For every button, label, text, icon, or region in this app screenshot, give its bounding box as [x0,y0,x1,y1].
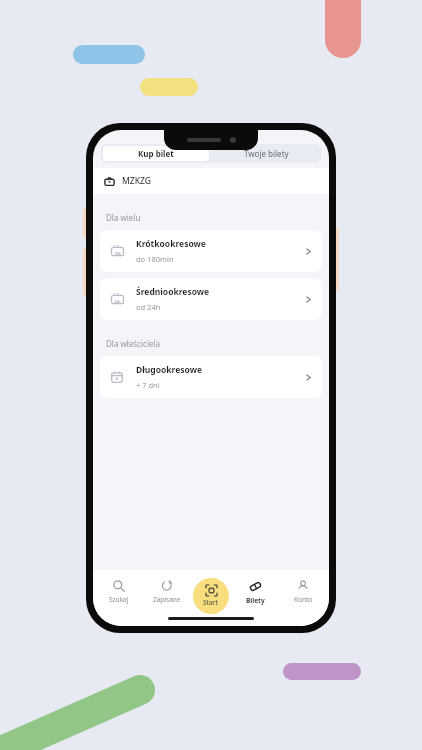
button[interactable]: Kup bilet [103,146,209,161]
staticText: do 180min [136,254,174,264]
staticText: Dla właściciela [106,338,161,349]
staticText: od 24h [136,302,161,312]
staticText: Zapisane [153,595,181,604]
staticText: 24h [114,299,121,304]
staticText: Dla wielu [106,212,141,223]
staticText: 180 [114,251,121,256]
button[interactable]: Długookresowe [100,356,322,398]
staticText: + 7 dni [136,380,160,390]
staticText: Bilety [246,596,265,605]
button[interactable]: Twoje bilety [211,144,321,163]
staticText: Średniookresowe [136,286,210,298]
button[interactable]: Konto [281,578,325,606]
staticText: Konto [294,595,313,604]
staticText: Twoje bilety [244,148,289,159]
staticText: Szukaj [109,595,129,604]
button[interactable]: 180 [100,230,322,272]
staticText: MZKZG [122,175,152,187]
button[interactable]: Bilety [233,578,277,607]
button[interactable]: Szukaj [97,578,141,606]
staticText: Kup bilet [138,148,174,159]
button[interactable]: MZKZG [93,168,329,194]
button[interactable]: 24h [100,278,322,320]
staticText: Długookresowe [136,364,203,376]
staticText: Krótkookresowe [136,238,206,250]
button[interactable]: Start [193,578,229,614]
staticText: Start [203,598,219,607]
button[interactable]: Zapisane [145,578,189,606]
